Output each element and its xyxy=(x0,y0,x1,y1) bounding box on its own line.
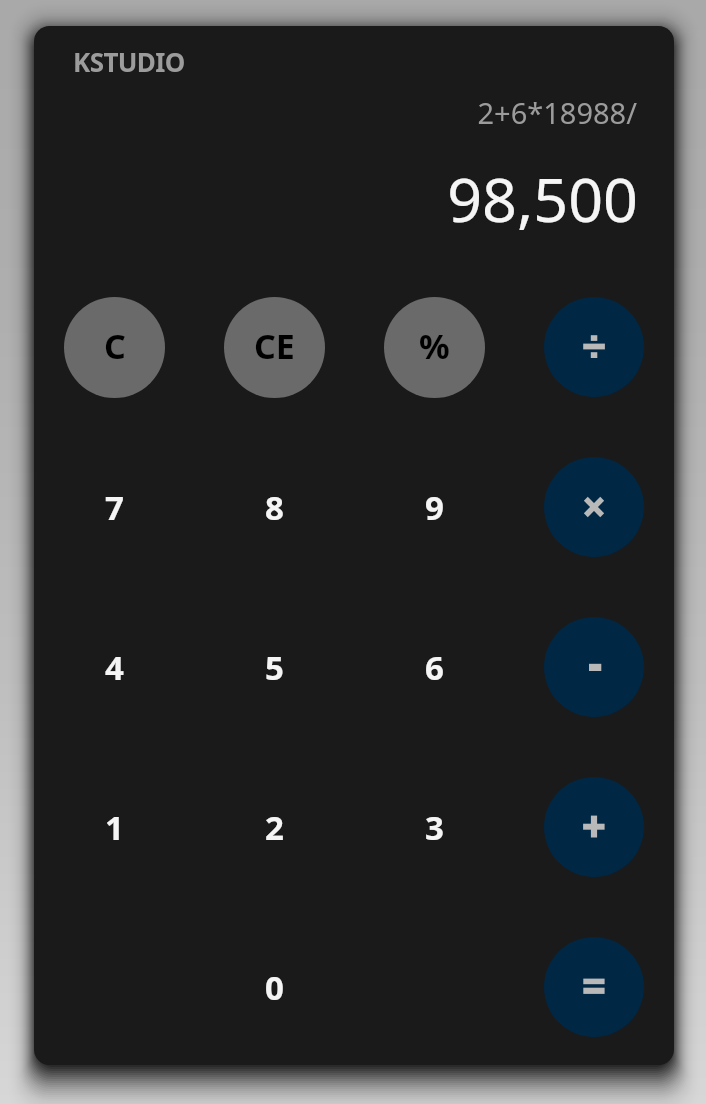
staticText: 0 xyxy=(265,965,284,1010)
button[interactable]: Divide xyxy=(544,297,644,397)
staticText: % xyxy=(419,323,450,369)
button[interactable]: Multiply xyxy=(544,457,644,557)
staticText: 9 xyxy=(425,485,444,530)
staticText: 2 xyxy=(265,805,284,850)
button[interactable]: 3 xyxy=(384,777,485,878)
staticText: 4 xyxy=(105,645,124,690)
staticText: 2+6*18988/ xyxy=(34,93,637,132)
button[interactable]: Subtract xyxy=(544,617,644,717)
staticText: 8 xyxy=(265,485,284,530)
staticText: C xyxy=(104,323,126,369)
staticText: CE xyxy=(254,323,295,369)
staticText: 1 xyxy=(105,805,124,850)
button[interactable]: 9 xyxy=(384,457,485,558)
staticText: 6 xyxy=(425,645,444,690)
staticText: 3 xyxy=(425,805,444,850)
button[interactable]: 0 xyxy=(224,937,325,1038)
button[interactable]: Equals xyxy=(544,937,644,1037)
staticText: 98,500 xyxy=(34,157,638,240)
button[interactable]: C xyxy=(64,297,165,398)
button[interactable]: 7 xyxy=(64,457,165,558)
staticText: 5 xyxy=(265,645,284,690)
staticText: 7 xyxy=(105,485,124,530)
button[interactable]: 1 xyxy=(64,777,165,878)
button[interactable]: 4 xyxy=(64,617,165,718)
button[interactable]: KSTUDIO xyxy=(73,44,185,79)
button[interactable]: 6 xyxy=(384,617,485,718)
button[interactable]: 8 xyxy=(224,457,325,558)
button[interactable]: % xyxy=(384,297,485,398)
button[interactable]: 5 xyxy=(224,617,325,718)
button[interactable]: 2 xyxy=(224,777,325,878)
button[interactable]: Add xyxy=(544,777,644,877)
button[interactable]: CE xyxy=(224,297,325,398)
